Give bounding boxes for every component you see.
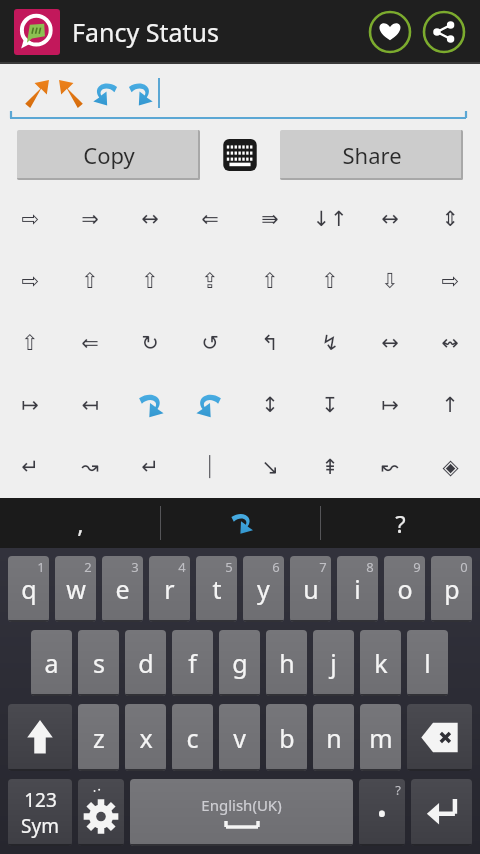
button[interactable]: z <box>78 704 119 771</box>
staticText: ↻ <box>141 331 159 355</box>
button[interactable]: e <box>102 556 143 622</box>
button[interactable]: s <box>78 630 119 696</box>
button[interactable]: Keyboard <box>218 130 262 180</box>
button[interactable]: ⇧ <box>60 250 120 312</box>
button[interactable]: ? <box>321 498 480 548</box>
staticText: ⇞ <box>321 455 339 479</box>
staticText: u <box>303 572 319 606</box>
staticText: ↦ <box>21 393 39 417</box>
button[interactable]: 123 <box>8 779 72 846</box>
button[interactable]: ↑ <box>420 374 480 436</box>
button[interactable]: ↕ <box>240 374 300 436</box>
staticText: j <box>330 646 337 680</box>
button[interactable]: i <box>337 556 378 622</box>
button[interactable]: o <box>384 556 425 622</box>
button[interactable]: Enter <box>411 779 472 846</box>
staticText: ↘ <box>261 455 279 479</box>
button[interactable]: w <box>55 556 96 622</box>
button[interactable]: ⇧ <box>240 250 300 312</box>
staticText: y <box>257 572 270 606</box>
button[interactable]: ↭ <box>420 312 480 374</box>
button[interactable] <box>180 374 240 436</box>
button[interactable]: f <box>172 630 213 696</box>
staticText: s <box>93 646 105 680</box>
staticText: q <box>21 572 37 606</box>
staticText: r <box>164 572 175 606</box>
staticText: ↤ <box>81 393 99 417</box>
button[interactable]: ↯ <box>300 312 360 374</box>
button[interactable]: a <box>31 630 72 696</box>
button[interactable]: ⇪ <box>180 250 240 312</box>
button[interactable]: ⇧ <box>300 250 360 312</box>
button[interactable]: m <box>360 704 401 771</box>
button[interactable]: g <box>219 630 260 696</box>
button[interactable]: ⇐ <box>180 188 240 250</box>
button[interactable]: d <box>125 630 166 696</box>
button[interactable]: ↧ <box>300 374 360 436</box>
button[interactable]: ↵ <box>120 436 180 498</box>
button[interactable]: y <box>243 556 284 622</box>
button[interactable]: Favorite <box>368 10 412 54</box>
button[interactable]: ⏐ <box>180 436 240 498</box>
button[interactable]: English(UK) <box>130 779 353 846</box>
button[interactable]: k <box>360 630 401 696</box>
button[interactable]: ↔ <box>360 188 420 250</box>
button[interactable]: ↔ <box>120 188 180 250</box>
staticText: ↯ <box>321 331 339 355</box>
button[interactable]: ⇨ <box>0 188 60 250</box>
button[interactable]: ↤ <box>60 374 120 436</box>
staticText: g <box>232 646 248 680</box>
button[interactable]: p <box>431 556 472 622</box>
button[interactable]: u <box>290 556 331 622</box>
button[interactable]: Backspace <box>407 704 472 771</box>
button[interactable]: ↦ <box>0 374 60 436</box>
button[interactable]: ⇒ <box>60 188 120 250</box>
button[interactable]: ↜ <box>360 436 420 498</box>
staticText: l <box>424 646 431 680</box>
button[interactable]: ↵ <box>0 436 60 498</box>
button[interactable]: b <box>266 704 307 771</box>
button[interactable]: ↻ <box>120 312 180 374</box>
button[interactable]: Arrow suggestion <box>161 498 320 548</box>
button[interactable]: l <box>407 630 448 696</box>
button[interactable]: , <box>0 498 160 548</box>
button[interactable]: ↰ <box>240 312 300 374</box>
button[interactable]: Copy <box>17 130 200 180</box>
button[interactable]: ↘ <box>240 436 300 498</box>
button[interactable]: ↦ <box>360 374 420 436</box>
staticText: ⇕ <box>441 207 459 231</box>
button[interactable]: j <box>313 630 354 696</box>
button[interactable]: t <box>196 556 237 622</box>
button[interactable]: ⇧ <box>0 312 60 374</box>
button[interactable] <box>120 374 180 436</box>
button[interactable]: ◈ <box>420 436 480 498</box>
button[interactable]: ⇧ <box>120 250 180 312</box>
button[interactable]: ⇨ <box>420 250 480 312</box>
button[interactable]: ↝ <box>60 436 120 498</box>
button[interactable]: ⇩ <box>360 250 420 312</box>
button[interactable]: ⇐ <box>60 312 120 374</box>
button[interactable]: ⇛ <box>240 188 300 250</box>
button[interactable]: Share <box>422 10 466 54</box>
button[interactable]: Shift <box>8 704 72 771</box>
button[interactable]: ⇞ <box>300 436 360 498</box>
button[interactable]: h <box>266 630 307 696</box>
button[interactable]: ↔ <box>360 312 420 374</box>
button[interactable]: ↺ <box>180 312 240 374</box>
staticText: ⇧ <box>81 269 99 293</box>
staticText: Fancy Status <box>72 15 368 49</box>
staticText: a <box>44 646 59 680</box>
button[interactable]: r <box>149 556 190 622</box>
staticText: ⇪ <box>201 269 219 293</box>
button[interactable]: v <box>219 704 260 771</box>
button[interactable]: Share <box>280 130 463 180</box>
button[interactable]: Settings <box>78 779 124 846</box>
button[interactable]: c <box>172 704 213 771</box>
button[interactable]: • <box>359 779 405 846</box>
button[interactable]: x <box>125 704 166 771</box>
button[interactable]: ⇨ <box>0 250 60 312</box>
button[interactable]: q <box>8 556 49 622</box>
button[interactable]: ⇕ <box>420 188 480 250</box>
button[interactable]: n <box>313 704 354 771</box>
button[interactable]: ↓↑ <box>300 188 360 250</box>
